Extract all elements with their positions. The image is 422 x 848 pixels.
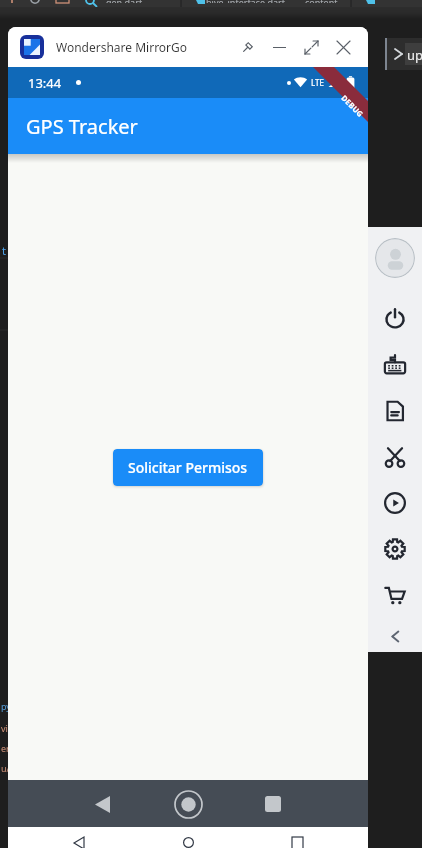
staticText: 13:44	[28, 74, 62, 92]
staticText: t	[2, 243, 6, 258]
other: Debug banner	[310, 67, 368, 125]
button[interactable]: Settings	[379, 533, 411, 565]
button[interactable]: Store	[379, 579, 411, 611]
staticText: py	[1, 700, 11, 712]
button[interactable]: Collapse	[382, 623, 408, 649]
button[interactable]: Home	[166, 782, 210, 826]
staticText: gen.dart	[106, 0, 143, 3]
button[interactable]: Close	[327, 30, 359, 64]
button[interactable]: Power	[379, 303, 411, 335]
staticText: GPS Tracker	[26, 113, 138, 140]
button[interactable]: Maximize	[295, 30, 327, 64]
staticText: vi	[1, 722, 8, 734]
staticText: Solicitar Permisos	[128, 458, 248, 477]
button[interactable]: Keyboard	[379, 349, 411, 381]
button[interactable]: Cut	[379, 441, 411, 473]
staticText: up	[407, 46, 422, 64]
button[interactable]: File	[379, 395, 411, 427]
button[interactable]: Recents	[251, 782, 295, 826]
button[interactable]: Back	[69, 837, 89, 848]
staticText: u/	[1, 762, 10, 774]
button[interactable]: Recents	[287, 837, 307, 848]
button[interactable]: Home	[178, 837, 198, 848]
staticText: Wondershare MirrorGo	[56, 39, 188, 55]
staticText: LTE	[311, 77, 324, 88]
button[interactable]: Pin	[231, 30, 263, 64]
button[interactable]: Account	[375, 238, 415, 278]
staticText: hive_interface.dart	[206, 0, 285, 3]
staticText: DEBUG	[339, 93, 366, 119]
button[interactable]: Back	[80, 782, 124, 826]
button[interactable]: Record	[379, 487, 411, 519]
staticText: er	[1, 742, 10, 754]
button[interactable]: Minimize	[263, 30, 295, 64]
button[interactable]: Solicitar Permisos	[113, 449, 263, 486]
staticText: content	[305, 0, 338, 3]
